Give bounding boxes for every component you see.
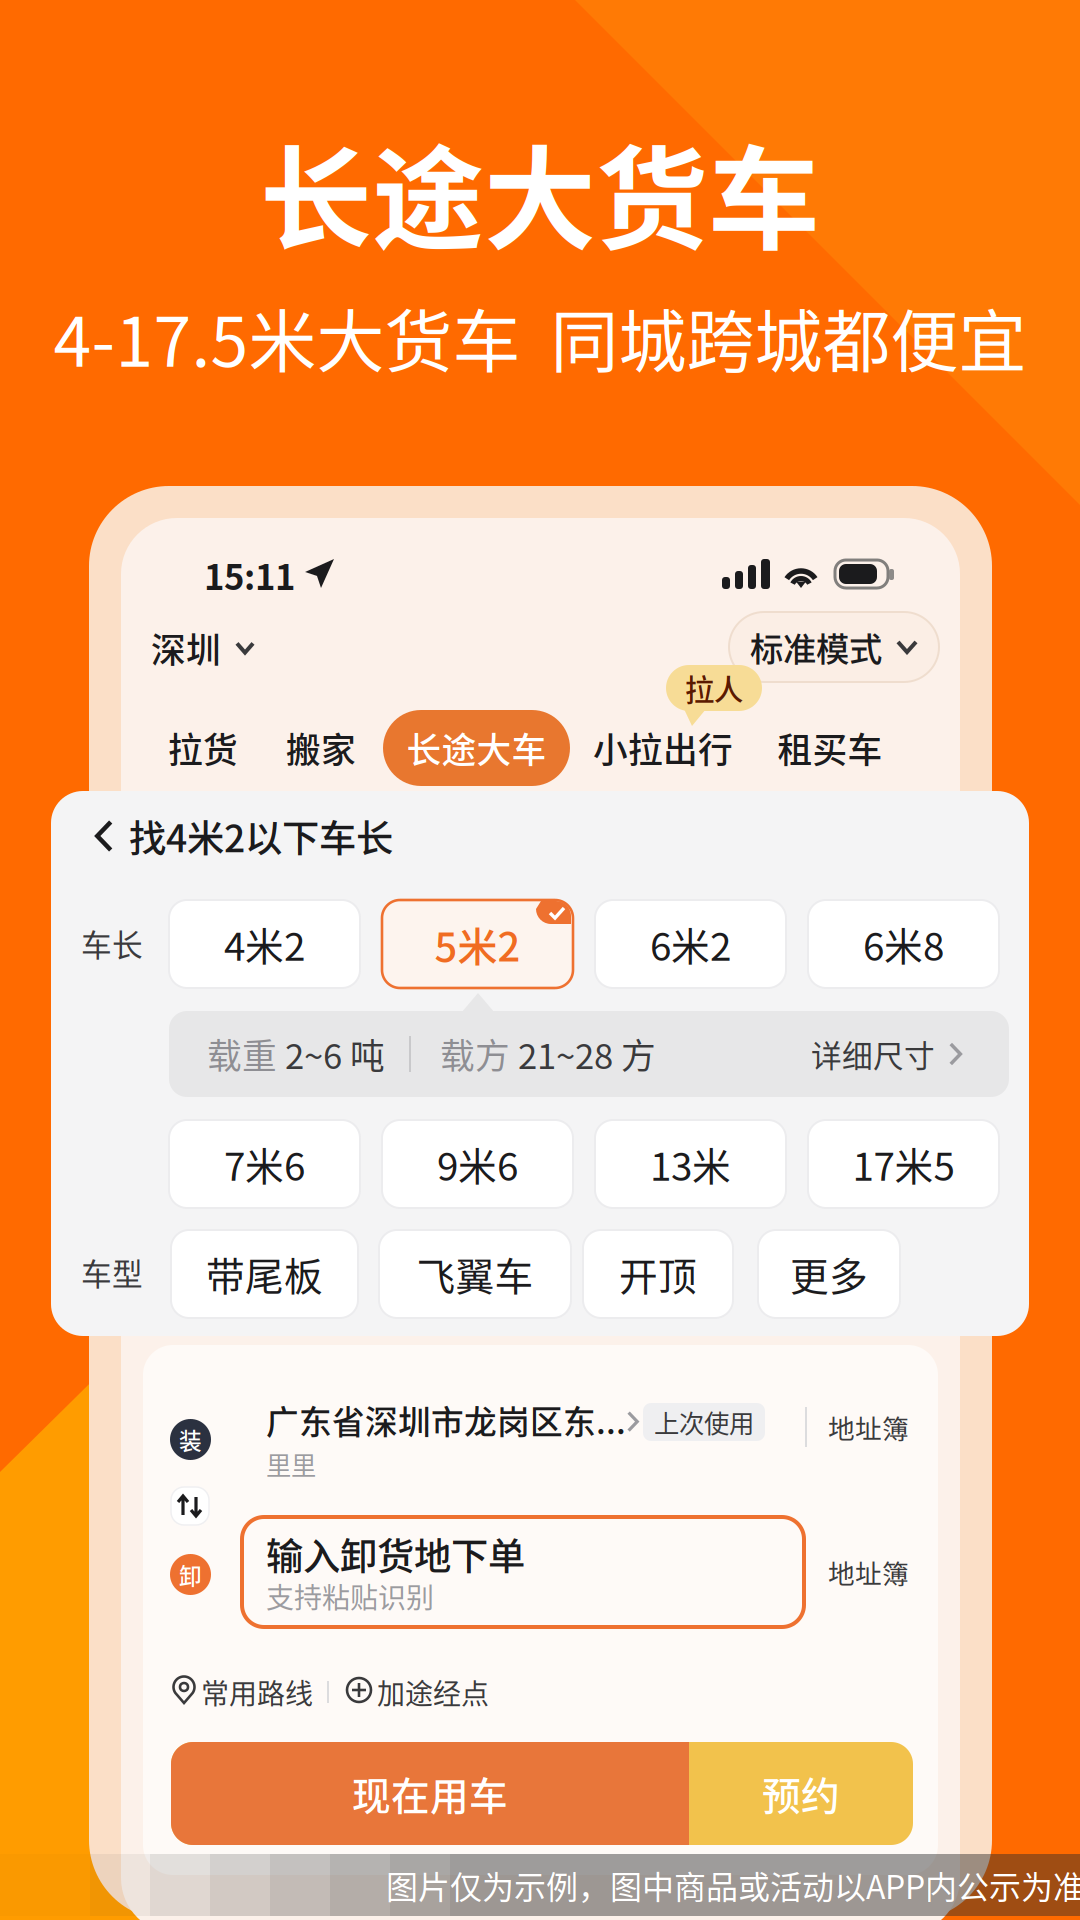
staticText: 预约 <box>762 1765 840 1821</box>
staticText: 常用路线 <box>201 1672 313 1712</box>
staticText: 支持粘贴识别 <box>266 1576 434 1616</box>
button[interactable]: Swap pickup and drop-off <box>143 1345 181 1383</box>
staticText: 输入卸货地下单 <box>266 1527 525 1581</box>
button[interactable]: 17米5 <box>808 1120 999 1208</box>
staticText: 6米8 <box>863 916 944 972</box>
button[interactable]: 租买车 <box>765 710 895 786</box>
staticText: 7米6 <box>224 1136 305 1192</box>
staticText: 6米2 <box>650 916 731 972</box>
staticText: 方 <box>621 1029 656 1079</box>
staticText: 21~28 <box>510 1029 621 1079</box>
staticText: 加途经点 <box>377 1672 489 1712</box>
button[interactable]: 更多 <box>758 1230 900 1318</box>
staticText: 搬家 <box>286 723 356 773</box>
staticText: 开顶 <box>619 1246 697 1302</box>
button[interactable]: 预约 <box>689 1742 913 1845</box>
staticText: 车长 <box>81 921 143 965</box>
button[interactable]: 搬家 <box>266 710 376 786</box>
button[interactable]: 拉货 <box>148 710 258 786</box>
staticText: 5米2 <box>434 915 520 973</box>
button[interactable]: 6米8 <box>808 900 999 988</box>
staticText: 2~6 <box>277 1029 350 1079</box>
staticText: 地址簿 <box>828 1408 909 1446</box>
staticText: 上次使用 <box>654 1404 754 1440</box>
button[interactable]: 飞翼车 <box>379 1230 571 1318</box>
staticText: 装 <box>179 1423 202 1456</box>
staticText: 里里 <box>266 1446 316 1482</box>
button[interactable]: 标准模式 <box>729 612 939 682</box>
staticText: 拉人 <box>685 667 743 709</box>
staticText: 深圳 <box>151 623 221 673</box>
button[interactable]: 长途大车 <box>383 710 570 786</box>
staticText: 更多 <box>790 1246 868 1302</box>
staticText: 载方 <box>440 1029 510 1079</box>
button[interactable]: 现在用车 <box>171 1742 689 1845</box>
staticText: 15:11 <box>204 550 295 600</box>
button[interactable]: 6米2 <box>595 900 786 988</box>
staticText: 13米 <box>650 1136 731 1192</box>
button[interactable]: 带尾板 <box>171 1230 358 1318</box>
staticText: 地址簿 <box>828 1553 909 1591</box>
staticText: 拉货 <box>168 723 238 773</box>
staticText: 载重 <box>207 1029 277 1079</box>
staticText: 4米2 <box>224 916 305 972</box>
staticText: 飞翼车 <box>416 1246 533 1302</box>
staticText: 卸 <box>179 1558 202 1591</box>
staticText: 现在用车 <box>352 1765 508 1821</box>
staticText: 广东省深圳市龙岗区东... <box>266 1396 626 1444</box>
button[interactable]: 9米6 <box>382 1120 573 1208</box>
staticText: 详细尺寸 <box>811 1032 935 1076</box>
button[interactable]: 13米 <box>595 1120 786 1208</box>
staticText: 车型 <box>81 1250 143 1294</box>
button[interactable]: 4米2 <box>169 900 360 988</box>
staticText: 长途大货车 <box>260 111 820 273</box>
staticText: 找4米2以下车长 <box>129 809 393 863</box>
staticText: 小拉出行 <box>593 723 733 773</box>
button[interactable]: 7米6 <box>169 1120 360 1208</box>
button[interactable]: 小拉出行 <box>583 710 743 786</box>
button[interactable]: 开顶 <box>583 1230 733 1318</box>
staticText: 租买车 <box>777 723 882 773</box>
staticText: 标准模式 <box>750 623 882 671</box>
staticText: 吨 <box>350 1029 385 1079</box>
staticText: 图片仅为示例，图中商品或活动以APP内公示为准 <box>386 1862 1080 1908</box>
button[interactable]: 深圳 <box>151 618 281 678</box>
button[interactable]: 5米2 <box>382 900 573 988</box>
staticText: 带尾板 <box>206 1246 323 1302</box>
staticText: 长途大车 <box>406 723 546 773</box>
staticText: 17米5 <box>852 1136 954 1192</box>
button[interactable]: 找4米2以下车长 <box>95 811 455 861</box>
button[interactable]: 详细尺寸 <box>811 1011 986 1097</box>
staticText: 9米6 <box>437 1136 518 1192</box>
staticText: 4-17.5米大货车 同城跨城都便宜 <box>53 288 1026 386</box>
